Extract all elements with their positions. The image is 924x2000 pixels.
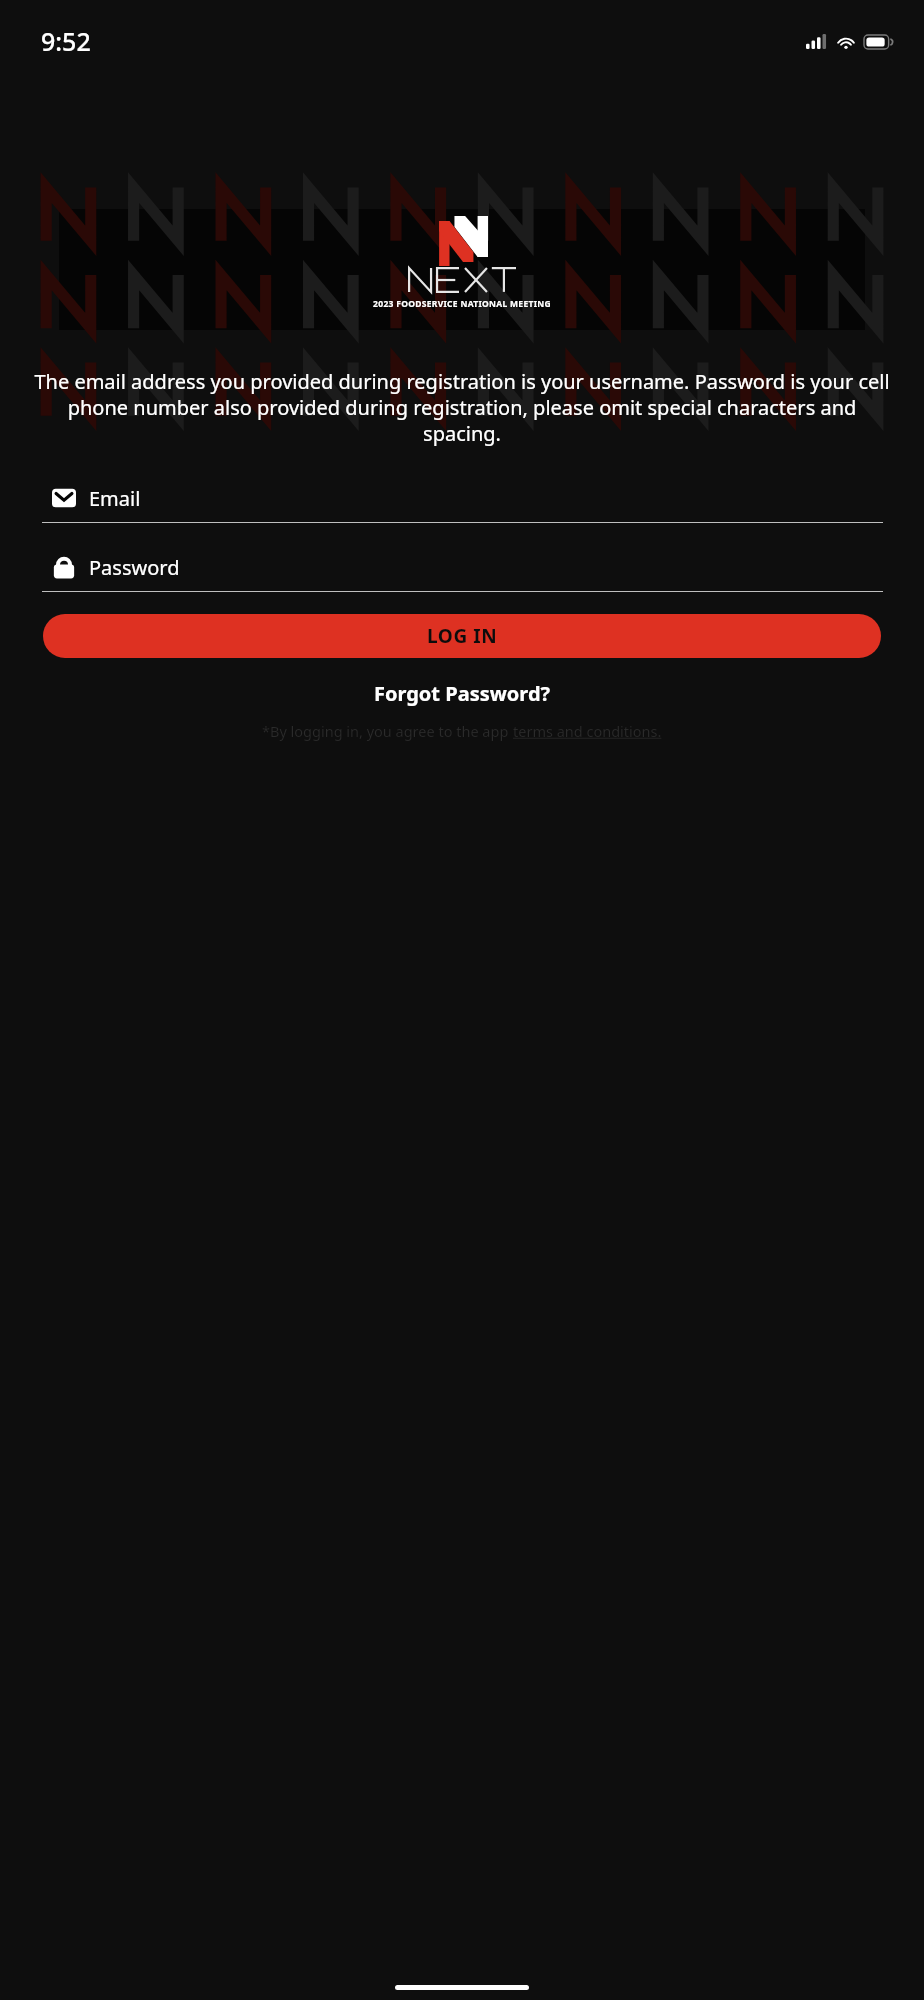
staticText: 2023 FOODSERVICE NATIONAL MEETING bbox=[373, 298, 551, 310]
staticText: The email address you provided during re… bbox=[30, 368, 894, 447]
button[interactable]: LOG IN bbox=[43, 614, 881, 658]
staticText: Email bbox=[89, 485, 141, 512]
staticText: Password bbox=[89, 554, 180, 581]
button[interactable]: Email bbox=[41, 474, 883, 523]
button[interactable]: Forgot Password? bbox=[0, 680, 924, 707]
staticText: *By logging in, you agree to the app bbox=[262, 721, 513, 741]
other: Password bbox=[41, 554, 87, 580]
staticText: LOG IN bbox=[427, 623, 498, 649]
staticText: terms and conditions. bbox=[513, 721, 662, 741]
button[interactable]: Password bbox=[41, 543, 883, 592]
button[interactable]: *By logging in, you agree to the app bbox=[22, 721, 902, 741]
other: Email bbox=[41, 486, 87, 510]
staticText: 9:52 bbox=[41, 24, 91, 58]
staticText: Forgot Password? bbox=[374, 680, 551, 707]
